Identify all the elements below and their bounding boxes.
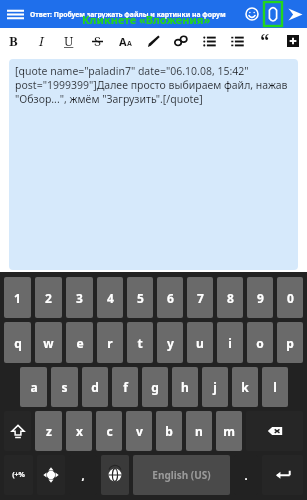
- button[interactable]: Bulleted list: [195, 28, 223, 54]
- staticText: j: [213, 379, 217, 395]
- button[interactable]: Text color: [139, 28, 167, 54]
- staticText: I: [39, 32, 44, 50]
- button[interactable]: q: [4, 322, 31, 363]
- staticText: y: [167, 335, 174, 351]
- button[interactable]: o: [247, 322, 273, 363]
- button[interactable]: e: [66, 322, 93, 363]
- button[interactable]: Font size: [111, 28, 139, 54]
- staticText: A: [127, 39, 132, 49]
- button[interactable]: x: [66, 411, 92, 451]
- button[interactable]: Underline: [55, 28, 83, 54]
- button[interactable]: Backspace: [246, 411, 303, 451]
- button[interactable]: Strikethrough: [83, 28, 111, 54]
- staticText: Ответ: Пробуем загружать файлы и картинк…: [30, 10, 226, 19]
- button[interactable]: t: [127, 322, 153, 363]
- button[interactable]: Function: [37, 455, 65, 495]
- button[interactable]: p: [277, 322, 303, 363]
- button[interactable]: 8: [217, 277, 243, 318]
- button[interactable]: Italic: [27, 28, 55, 54]
- button[interactable]: s: [51, 367, 78, 407]
- button[interactable]: 6: [157, 277, 183, 318]
- button[interactable]: ,: [69, 455, 97, 495]
- staticText: 5: [137, 290, 144, 306]
- button[interactable]: Send: [283, 2, 307, 26]
- staticText: d: [91, 379, 99, 395]
- staticText: s: [61, 379, 68, 395]
- staticText: q: [14, 335, 22, 351]
- staticText: 1: [14, 290, 21, 306]
- button[interactable]: u: [187, 322, 213, 363]
- staticText: l: [273, 379, 277, 395]
- button[interactable]: Numbered list: [223, 28, 251, 54]
- staticText: v: [136, 423, 143, 439]
- button[interactable]: b: [156, 411, 182, 451]
- button[interactable]: 9: [247, 277, 273, 318]
- staticText: h: [181, 379, 189, 395]
- button[interactable]: (+%: [4, 455, 33, 495]
- button[interactable]: Enter: [262, 455, 303, 495]
- staticText: (+%: [12, 470, 25, 480]
- button[interactable]: More: [279, 28, 307, 54]
- button[interactable]: f: [112, 367, 138, 407]
- button[interactable]: v: [126, 411, 152, 451]
- staticText: [quote name="paladin7" date="06.10.08, 1…: [15, 64, 292, 106]
- button[interactable]: .: [234, 455, 258, 495]
- button[interactable]: r: [97, 322, 123, 363]
- staticText: m: [223, 423, 235, 439]
- staticText: e: [76, 335, 84, 351]
- button[interactable]: Attach: [263, 1, 283, 27]
- staticText: c: [106, 423, 113, 439]
- button[interactable]: Menu: [0, 0, 30, 28]
- staticText: p: [286, 335, 294, 351]
- button[interactable]: 5: [127, 277, 153, 318]
- button[interactable]: Quote: [251, 28, 279, 54]
- staticText: k: [241, 379, 249, 395]
- staticText: 7: [197, 290, 204, 306]
- staticText: A: [119, 34, 127, 49]
- button[interactable]: Emoji: [241, 3, 263, 25]
- button[interactable]: 0: [277, 277, 303, 318]
- button[interactable]: Link: [167, 28, 195, 54]
- button[interactable]: k: [232, 367, 258, 407]
- button[interactable]: Language: [101, 455, 129, 495]
- button[interactable]: y: [157, 322, 183, 363]
- staticText: o: [256, 335, 264, 351]
- staticText: w: [43, 335, 54, 351]
- button[interactable]: Bold: [0, 28, 27, 54]
- button[interactable]: h: [172, 367, 198, 407]
- staticText: b: [165, 423, 173, 439]
- button[interactable]: w: [35, 322, 62, 363]
- button[interactable]: j: [202, 367, 228, 407]
- button[interactable]: [quote name="paladin7" date="06.10.08, 1…: [9, 59, 298, 270]
- button[interactable]: i: [217, 322, 243, 363]
- button[interactable]: 4: [97, 277, 123, 318]
- staticText: 8: [227, 290, 234, 306]
- button[interactable]: m: [216, 411, 242, 451]
- button[interactable]: 7: [187, 277, 213, 318]
- button[interactable]: l: [262, 367, 288, 407]
- button[interactable]: c: [96, 411, 122, 451]
- staticText: 6: [167, 290, 174, 306]
- button[interactable]: Shift: [4, 411, 31, 451]
- staticText: U: [64, 32, 74, 50]
- button[interactable]: z: [35, 411, 62, 451]
- staticText: 2: [45, 290, 52, 306]
- button[interactable]: 3: [66, 277, 93, 318]
- button[interactable]: English (US): [133, 455, 230, 495]
- staticText: ,: [81, 468, 85, 483]
- staticText: “: [260, 28, 270, 54]
- button[interactable]: a: [20, 367, 47, 407]
- button[interactable]: d: [82, 367, 108, 407]
- staticText: u: [196, 335, 204, 351]
- button[interactable]: 2: [35, 277, 62, 318]
- staticText: t: [137, 335, 143, 351]
- button[interactable]: 1: [4, 277, 31, 318]
- button[interactable]: n: [186, 411, 212, 451]
- staticText: a: [30, 379, 38, 395]
- staticText: x: [76, 423, 83, 439]
- staticText: B: [9, 32, 18, 50]
- staticText: 4: [107, 290, 114, 306]
- staticText: Кликнете «Вложения»: [82, 12, 211, 27]
- staticText: f: [123, 379, 128, 395]
- button[interactable]: g: [142, 367, 168, 407]
